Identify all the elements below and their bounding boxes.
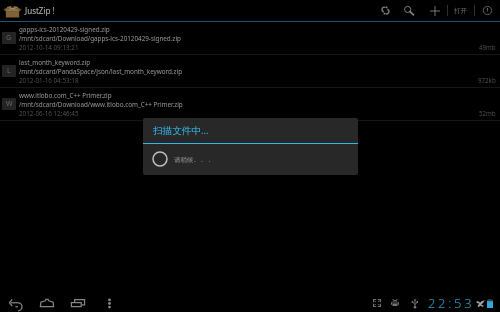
staticText: G xyxy=(6,33,12,43)
staticText: 2012-01-16 04:53:18 xyxy=(19,76,79,85)
staticText: 请稍候 xyxy=(174,156,194,164)
staticText: 2012-06-16 12:46:45 xyxy=(19,109,79,118)
staticText: JustZip ! xyxy=(25,5,55,16)
button[interactable]: G xyxy=(0,22,500,55)
staticText: 972kb xyxy=(478,76,496,84)
staticText: 扫描文件中... xyxy=(153,124,209,137)
staticText: . . . xyxy=(194,155,213,164)
button[interactable]: JustZip ! xyxy=(0,4,61,17)
staticText: W xyxy=(6,99,13,109)
staticText: /mnt/sdcard/Download/www.itlobo.com_C++ … xyxy=(19,100,183,109)
button[interactable]: Info xyxy=(475,0,499,21)
staticText: gapps-ics-20120429-signed.zip xyxy=(19,25,110,34)
button[interactable]: Refresh xyxy=(373,0,397,21)
staticText: L xyxy=(7,66,11,76)
staticText: 52mb xyxy=(479,109,496,117)
button[interactable]: W xyxy=(0,88,500,121)
staticText: 22:53 xyxy=(428,294,475,312)
button[interactable]: Search xyxy=(397,0,421,21)
staticText: /mnt/sdcard/Download/gapps-ics-20120429-… xyxy=(19,34,181,43)
button[interactable]: Home xyxy=(37,290,57,312)
button[interactable]: 打开 xyxy=(448,0,474,21)
button[interactable]: Recent apps xyxy=(68,290,88,312)
button[interactable]: L xyxy=(0,55,500,88)
button[interactable]: Add xyxy=(423,0,447,21)
staticText: 49mb xyxy=(479,43,496,51)
staticText: 2012-10-14 09:13:21 xyxy=(19,43,79,52)
staticText: /mnt/sdcard/PandaSpace/json/last_month_k… xyxy=(19,67,183,76)
staticText: last_month_keyword.zip xyxy=(19,58,91,67)
button[interactable]: Back xyxy=(6,290,26,312)
staticText: 打开 xyxy=(454,7,468,15)
staticText: www.itlobo.com_C++ Primer.zip xyxy=(19,91,112,100)
button[interactable]: Menu xyxy=(104,290,114,312)
